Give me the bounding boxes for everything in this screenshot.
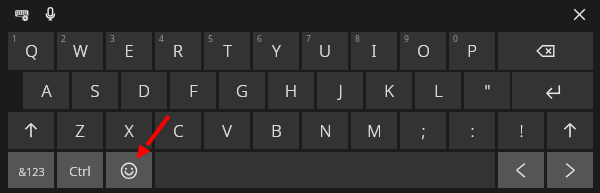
button[interactable]: Keyboard settings <box>13 7 31 22</box>
button[interactable]: Z <box>57 112 103 149</box>
staticText: Y <box>272 39 281 61</box>
button[interactable]: Enter <box>512 72 593 109</box>
staticText: G <box>236 79 248 101</box>
button[interactable]: 3 <box>106 32 152 70</box>
staticText: F <box>189 79 198 101</box>
staticText: 9 <box>404 33 409 45</box>
button[interactable]: Right arrow <box>547 152 593 188</box>
staticText: 0 <box>453 33 458 45</box>
staticText: 6 <box>257 33 262 45</box>
staticText: 2 <box>61 33 66 45</box>
button[interactable]: N <box>302 112 348 149</box>
button[interactable]: H <box>268 72 314 109</box>
button[interactable]: J <box>317 72 363 109</box>
button[interactable]: : <box>449 112 495 149</box>
staticText: Ctrl <box>69 162 91 180</box>
button[interactable]: 9 <box>400 32 446 70</box>
button[interactable]: C <box>155 112 201 149</box>
button[interactable]: Close <box>570 5 589 24</box>
button[interactable]: Left arrow <box>498 152 544 188</box>
button[interactable]: 5 <box>204 32 250 70</box>
staticText: C <box>173 119 184 141</box>
button[interactable]: S <box>72 72 118 109</box>
staticText: ! <box>519 119 524 141</box>
staticText: M <box>367 119 382 141</box>
button[interactable]: A <box>23 72 69 109</box>
button[interactable]: M <box>351 112 397 149</box>
staticText: 8 <box>355 33 360 45</box>
button[interactable]: D <box>121 72 167 109</box>
button[interactable]: " <box>464 72 510 109</box>
button[interactable]: V <box>204 112 250 149</box>
staticText: I <box>371 39 377 61</box>
button[interactable]: 4 <box>155 32 201 70</box>
staticText: O <box>417 39 430 61</box>
button[interactable]: Microphone <box>45 6 56 22</box>
button[interactable]: ; <box>400 112 446 149</box>
staticText: &123 <box>18 164 45 179</box>
staticText: S <box>90 79 100 101</box>
staticText: R <box>173 39 183 61</box>
staticText: 3 <box>110 33 115 45</box>
button[interactable]: 7 <box>302 32 348 70</box>
staticText: J <box>338 79 343 101</box>
button[interactable]: ! <box>498 112 544 149</box>
staticText: U <box>319 39 331 61</box>
staticText: ; <box>421 119 426 141</box>
staticText: P <box>467 39 477 61</box>
staticText: Z <box>75 119 85 141</box>
button[interactable]: Shift <box>8 112 54 149</box>
button[interactable]: G <box>219 72 265 109</box>
staticText: B <box>271 119 282 141</box>
staticText: 1 <box>12 33 17 45</box>
staticText: W <box>73 39 88 61</box>
button[interactable]: L <box>415 72 461 109</box>
staticText: A <box>41 79 52 101</box>
staticText: Q <box>25 39 38 61</box>
staticText: 4 <box>159 33 164 45</box>
button[interactable]: Backspace <box>498 32 593 70</box>
staticText: 7 <box>306 33 311 45</box>
staticText: L <box>434 79 443 101</box>
button[interactable]: &123 <box>8 152 54 188</box>
staticText: N <box>319 119 332 141</box>
staticText: X <box>124 119 134 141</box>
button[interactable]: 0 <box>449 32 495 70</box>
button[interactable]: 8 <box>351 32 397 70</box>
button[interactable]: B <box>253 112 299 149</box>
staticText: H <box>285 79 297 101</box>
staticText: K <box>384 79 394 101</box>
staticText: D <box>138 79 150 101</box>
staticText: " <box>484 79 491 101</box>
button[interactable]: Shift <box>547 112 593 149</box>
staticText: : <box>470 119 475 141</box>
button[interactable]: K <box>366 72 412 109</box>
button[interactable]: F <box>170 72 216 109</box>
staticText: 5 <box>208 33 213 45</box>
staticText: V <box>222 119 232 141</box>
button[interactable]: Emoji <box>106 152 152 188</box>
button[interactable]: Ctrl <box>57 152 103 188</box>
button[interactable]: 2 <box>57 32 103 70</box>
button[interactable]: X <box>106 112 152 149</box>
button[interactable]: 6 <box>253 32 299 70</box>
staticText: E <box>124 39 134 61</box>
staticText: T <box>223 39 232 61</box>
button[interactable]: 1 <box>8 32 54 70</box>
